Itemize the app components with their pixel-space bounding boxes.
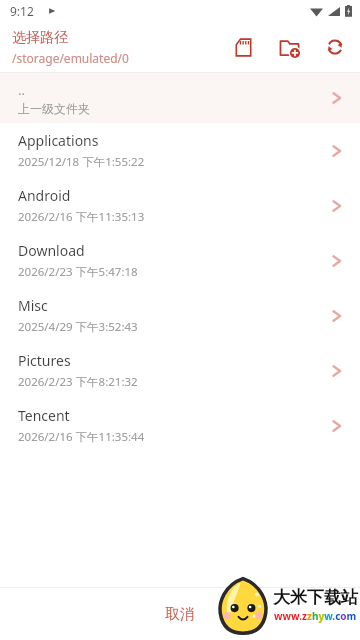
button[interactable]: Applications [0,123,360,178]
button[interactable]: 取消 [0,588,360,640]
staticText: 选择路径 [12,29,68,47]
button[interactable]: Android [0,178,360,233]
staticText: 上一级文件夹 [18,101,90,116]
button[interactable]: New folder [274,32,304,62]
staticText: 2026/2/23 下午8:21:32 [18,374,138,390]
staticText: Download [18,241,85,260]
button[interactable]: Download [0,233,360,288]
staticText: www.zzhyw.com [274,609,357,623]
staticText: 2026/2/16 下午11:35:44 [18,429,145,445]
staticText: Pictures [18,351,71,370]
button[interactable]: Misc [0,288,360,343]
button[interactable]: Refresh [320,32,350,62]
button[interactable]: .. [0,73,360,123]
staticText: 取消 [165,605,195,624]
staticText: 2026/2/23 下午5:47:18 [18,264,138,280]
button[interactable]: SD card storage [228,32,258,62]
staticText: Android [18,186,71,205]
staticText: Tencent [18,406,70,425]
button[interactable]: Tencent [0,398,360,453]
staticText: 大米下载站 [273,587,358,608]
staticText: 2026/2/16 下午11:35:13 [18,209,145,225]
staticText: 2025/4/29 下午3:52:43 [18,319,138,335]
staticText: /storage/emulated/0 [12,50,129,66]
staticText: .. [18,81,25,99]
button[interactable]: Pictures [0,343,360,398]
staticText: 9:12 [10,3,34,19]
staticText: Applications [18,131,99,150]
staticText: Misc [18,296,48,315]
staticText: 2025/12/18 下午1:55:22 [18,154,145,170]
